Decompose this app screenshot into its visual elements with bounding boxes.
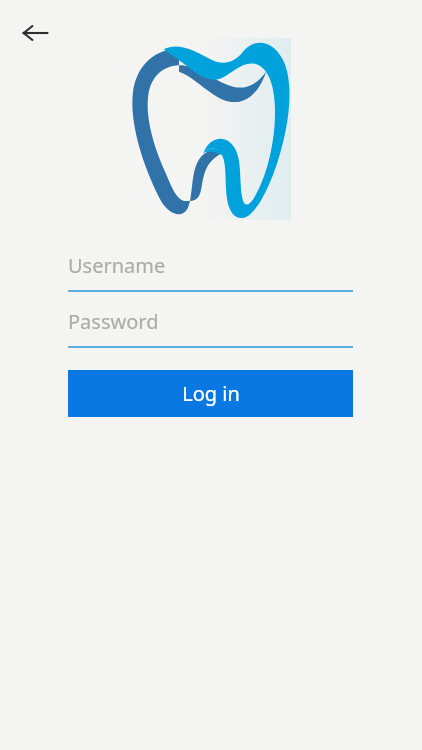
button[interactable]: Back [16,14,54,52]
button[interactable]: Username [68,252,353,292]
staticText: Password [68,308,159,335]
button[interactable]: Log in [68,370,353,417]
staticText: Username [68,252,166,279]
button[interactable]: Password [68,308,353,348]
staticText: Log in [182,380,240,407]
